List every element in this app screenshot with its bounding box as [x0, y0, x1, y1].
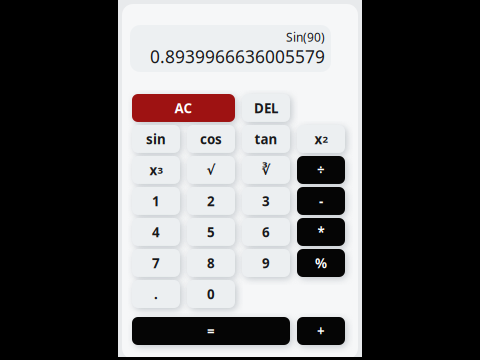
button[interactable]: %	[297, 249, 345, 277]
button[interactable]: 1	[132, 187, 180, 215]
staticText: x	[314, 130, 322, 148]
staticText: .	[154, 285, 158, 303]
staticText: cos	[200, 130, 222, 148]
staticText: AC	[174, 99, 192, 117]
staticText: 9	[262, 254, 270, 272]
button[interactable]: *	[297, 218, 345, 246]
staticText: 3	[262, 192, 270, 210]
button[interactable]: 4	[132, 218, 180, 246]
staticText: 2	[322, 132, 327, 146]
staticText: 2	[207, 192, 215, 210]
button[interactable]: DEL	[242, 94, 290, 122]
staticText: 1	[152, 192, 160, 210]
button[interactable]: 5	[187, 218, 235, 246]
button[interactable]: 0	[187, 280, 235, 308]
staticText: DEL	[254, 99, 278, 117]
staticText: ∛	[261, 162, 270, 178]
staticText: x	[149, 161, 157, 179]
button[interactable]: 2	[187, 187, 235, 215]
button[interactable]: =	[132, 317, 290, 345]
button[interactable]: -	[297, 187, 345, 215]
staticText: =	[207, 322, 215, 340]
staticText: *	[317, 223, 324, 241]
button[interactable]: ∛	[242, 156, 290, 184]
button[interactable]: .	[132, 280, 180, 308]
staticText: +	[317, 322, 325, 340]
staticText: 7	[152, 254, 160, 272]
button[interactable]: √	[187, 156, 235, 184]
staticText: -	[319, 192, 323, 210]
staticText: %	[315, 254, 327, 272]
button[interactable]: cos	[187, 125, 235, 153]
staticText: sin	[146, 130, 166, 148]
staticText: 6	[262, 223, 270, 241]
button[interactable]: ÷	[297, 156, 345, 184]
staticText: Sin(90)	[286, 29, 325, 45]
staticText: √	[206, 162, 215, 178]
button[interactable]: x	[297, 125, 345, 153]
button[interactable]: 7	[132, 249, 180, 277]
button[interactable]: AC	[132, 94, 235, 122]
staticText: 4	[152, 223, 160, 241]
staticText: 0	[207, 285, 215, 303]
button[interactable]: 8	[187, 249, 235, 277]
button[interactable]: sin	[132, 125, 180, 153]
button[interactable]: tan	[242, 125, 290, 153]
staticText: 5	[207, 223, 215, 241]
staticText: tan	[254, 130, 277, 148]
staticText: 8	[207, 254, 215, 272]
button[interactable]: x	[132, 156, 180, 184]
button[interactable]: 6	[242, 218, 290, 246]
staticText: ÷	[317, 161, 325, 179]
button[interactable]: +	[297, 317, 345, 345]
staticText: 0.8939966636005579	[150, 45, 325, 68]
staticText: 3	[157, 163, 162, 177]
button[interactable]: 9	[242, 249, 290, 277]
button[interactable]: 3	[242, 187, 290, 215]
